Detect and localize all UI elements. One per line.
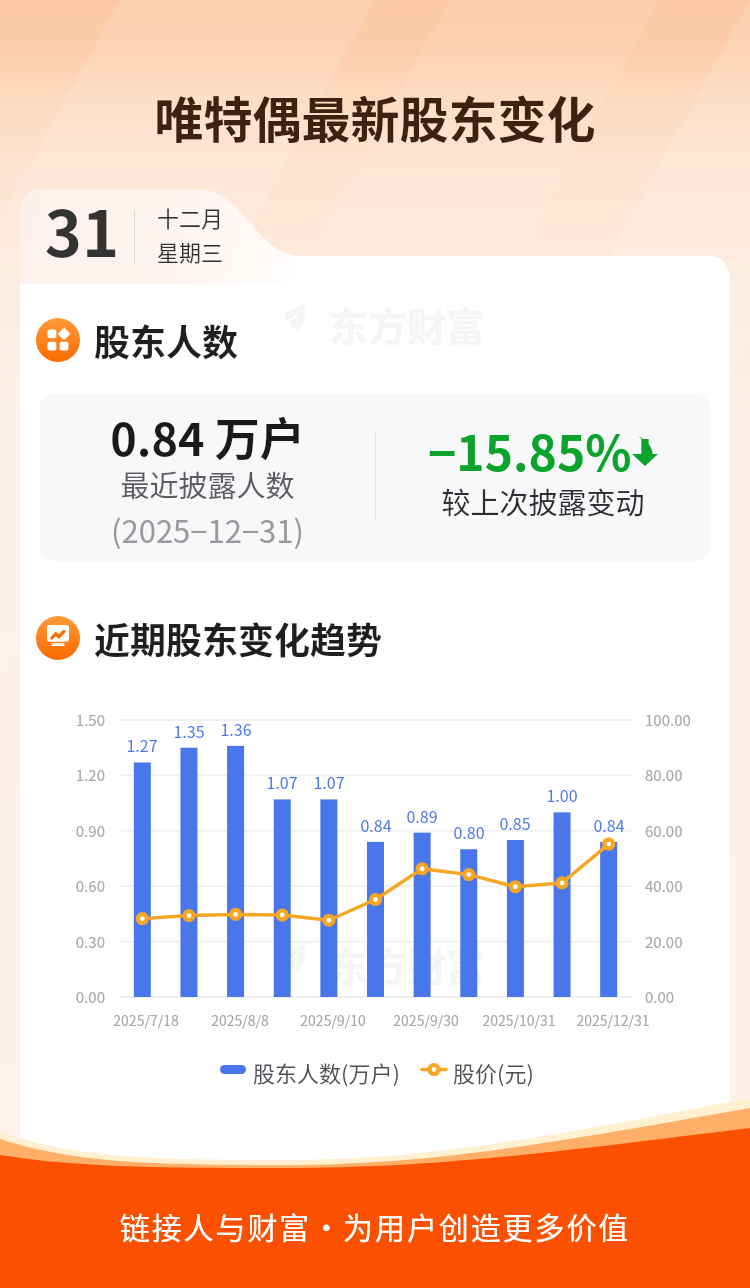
staticText: 80.00 — [645, 764, 735, 786]
staticText: 2025/8/8 — [190, 1010, 290, 1030]
staticText: 1.50 — [55, 709, 105, 731]
staticText: 1.07 — [252, 770, 312, 793]
staticText: 较上次披露变动 — [376, 480, 710, 522]
staticText: (2025−12−31) — [40, 507, 375, 552]
staticText: 1.27 — [112, 733, 172, 756]
staticText: 东方财富 — [329, 296, 486, 352]
staticText: 0.84 — [346, 813, 406, 836]
staticText: 0.84 万户 — [40, 404, 375, 469]
staticText: 0.30 — [55, 931, 105, 953]
button[interactable]: 近期股东变化趋势 — [36, 612, 383, 664]
staticText: 最近披露人数 — [40, 463, 375, 505]
staticText: 1.07 — [299, 770, 359, 793]
staticText: 链接人与财富·为用户创造更多价值 — [0, 1204, 750, 1247]
staticText: 2025/7/18 — [96, 1010, 196, 1030]
button[interactable] — [414, 1050, 544, 1090]
staticText: 0.89 — [392, 804, 452, 827]
staticText: 100.00 — [645, 709, 735, 731]
staticText: 股价(元) — [453, 1056, 534, 1088]
staticText: 十二月 — [157, 201, 224, 233]
staticText: 1.00 — [532, 783, 592, 806]
staticText: 0.60 — [55, 875, 105, 897]
staticText: 2025/12/31 — [563, 1010, 663, 1030]
staticText: 星期三 — [157, 235, 224, 267]
staticText: 0.00 — [55, 986, 105, 1008]
staticText: 东方财富 — [329, 936, 486, 992]
staticText: 股东人数 — [94, 314, 239, 366]
staticText: 1.20 — [55, 764, 105, 786]
staticText: 0.80 — [439, 820, 499, 843]
staticText: 0.00 — [645, 986, 735, 1008]
staticText: 1.36 — [206, 717, 266, 740]
staticText: 0.90 — [55, 820, 105, 842]
staticText: 0.85 — [485, 811, 545, 834]
button[interactable]: 31 — [20, 190, 288, 284]
staticText: 2025/9/30 — [376, 1010, 476, 1030]
staticText: 近期股东变化趋势 — [94, 612, 383, 664]
staticText: 0.84 — [579, 813, 639, 836]
button[interactable] — [210, 1050, 410, 1090]
staticText: 唯特偶最新股东变化 — [0, 81, 750, 152]
staticText: 60.00 — [645, 820, 735, 842]
staticText: 31 — [37, 184, 127, 275]
staticText: 20.00 — [645, 931, 735, 953]
staticText: 2025/10/31 — [469, 1010, 569, 1030]
staticText: 40.00 — [645, 875, 735, 897]
staticText: 股东人数(万户) — [253, 1056, 400, 1088]
button[interactable]: 股东人数 — [36, 314, 239, 366]
staticText: 1.35 — [159, 719, 219, 742]
staticText: 2025/9/10 — [283, 1010, 383, 1030]
staticText: −15.85% — [428, 415, 632, 485]
